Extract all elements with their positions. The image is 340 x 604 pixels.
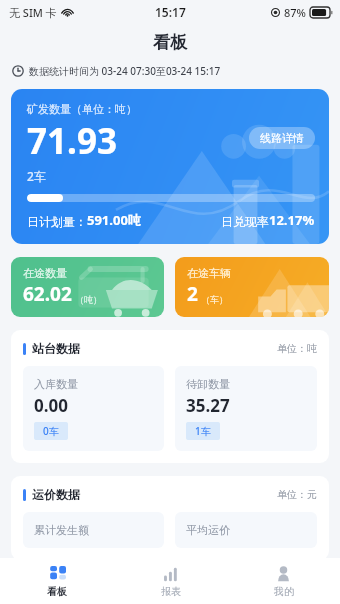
staticText: 线路详情	[260, 131, 304, 145]
staticText: 报表	[161, 585, 181, 598]
button[interactable]: 线路详情	[249, 127, 315, 149]
button[interactable]: 看板	[0, 558, 114, 604]
staticText: 运价数据	[32, 487, 80, 502]
button[interactable]: 站台数据	[11, 330, 329, 463]
staticText: 在途车辆	[187, 266, 231, 280]
button[interactable]: 在途车辆	[175, 257, 329, 317]
staticText: 2车	[27, 168, 46, 184]
staticText: 我的	[274, 585, 294, 598]
button[interactable]: 入库数量	[23, 366, 164, 451]
button[interactable]: 矿发数量（单位：吨）	[11, 89, 329, 244]
staticText: 单位：吨	[277, 342, 317, 355]
staticText: 0.00	[34, 394, 68, 417]
staticText: 在途数量	[23, 266, 67, 280]
staticText: 累计发生额	[34, 523, 89, 537]
staticText: 站台数据	[32, 341, 80, 356]
button[interactable]: 报表	[114, 558, 227, 604]
staticText: 看板	[153, 32, 187, 53]
staticText: 日兑现率	[221, 214, 269, 229]
staticText: 62.02	[23, 281, 72, 307]
staticText: 87%	[284, 5, 306, 20]
staticText: 日计划量：	[27, 214, 87, 229]
staticText: 矿发数量（单位：吨）	[27, 102, 137, 116]
button[interactable]: 累计发生额	[23, 512, 164, 548]
staticText: 591.00吨	[87, 211, 141, 229]
staticText: （吨）	[75, 294, 102, 305]
staticText: 平均运价	[186, 523, 230, 537]
staticText: 单位：元	[277, 488, 317, 501]
staticText: 0车	[43, 424, 59, 438]
staticText: 数据统计时间为 03-24 07:30至03-24 15:17	[29, 64, 221, 78]
staticText: 15:17	[155, 4, 186, 20]
staticText: 无 SIM 卡	[9, 5, 57, 20]
staticText: 71.93	[27, 117, 117, 165]
button[interactable]: 待卸数量	[175, 366, 317, 451]
button[interactable]: 在途数量	[11, 257, 164, 317]
staticText: 35.27	[186, 394, 230, 417]
button[interactable]: 我的	[227, 558, 340, 604]
staticText: （车）	[201, 294, 228, 305]
staticText: 看板	[47, 585, 67, 598]
button[interactable]: 运价数据	[11, 476, 329, 560]
staticText: 待卸数量	[186, 377, 230, 391]
staticText: 12.17%	[269, 211, 315, 229]
staticText: 2	[187, 281, 198, 307]
staticText: 入库数量	[34, 377, 78, 391]
staticText: 1车	[195, 424, 211, 438]
button[interactable]: 平均运价	[175, 512, 317, 548]
